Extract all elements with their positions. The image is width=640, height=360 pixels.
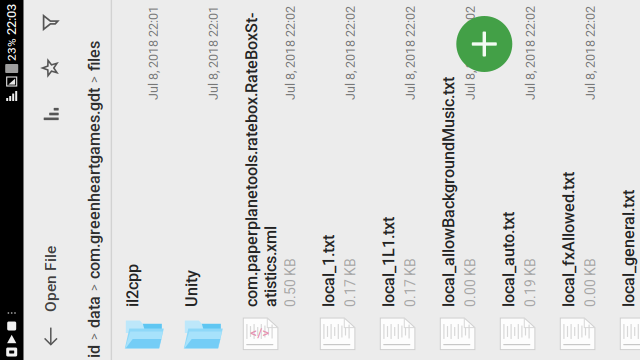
button[interactable]: local_auto.txt bbox=[140, 348, 500, 360]
staticText: local_1.txt bbox=[193, 179, 265, 198]
staticText: Jul 8, 2018 22:02 bbox=[400, 203, 494, 218]
staticText: 0.17 KB bbox=[193, 262, 242, 279]
staticText: Jul 8, 2018 22:02 bbox=[400, 143, 494, 158]
staticText: com.paperplanetools.ratebox.RateBoxStati… bbox=[193, 102, 487, 140]
staticText: local_allowBackgroundMusic.txt bbox=[193, 299, 423, 318]
button[interactable]: local_allowBackgroundMusic.txt bbox=[140, 288, 500, 348]
button[interactable]: Unity bbox=[140, 31, 500, 91]
button[interactable]: il2cpp bbox=[140, 0, 500, 31]
button[interactable]: Add bbox=[428, 316, 484, 360]
staticText: local_1L1.txt bbox=[193, 239, 283, 258]
staticText: Jul 8, 2018 22:02 bbox=[400, 263, 494, 278]
staticText: Jul 8, 2018 22:01 bbox=[400, 6, 494, 21]
button[interactable]: local_1.txt bbox=[140, 168, 500, 228]
button[interactable]: local_1L1.txt bbox=[140, 228, 500, 288]
staticText: Unity bbox=[193, 42, 230, 61]
staticText: Jul 8, 2018 22:01 bbox=[400, 66, 494, 81]
staticText: 0.00 KB bbox=[193, 322, 242, 339]
staticText: Jul 8, 2018 22:02 bbox=[400, 323, 494, 338]
button[interactable]: </> bbox=[140, 91, 500, 168]
